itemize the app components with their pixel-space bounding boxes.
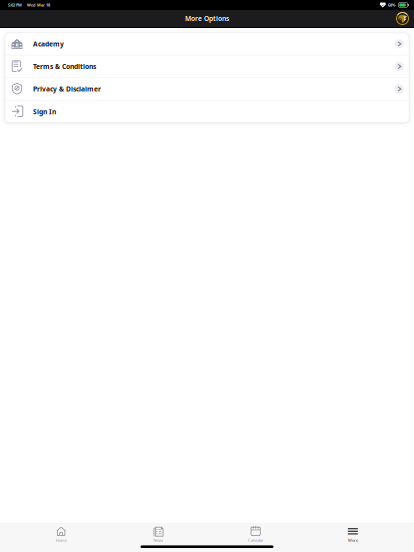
staticText: Sign In (33, 107, 56, 116)
button[interactable]: Terms & Conditions (5, 55, 409, 77)
button[interactable]: News (110, 526, 207, 543)
staticText: Calendar (248, 537, 264, 543)
button[interactable]: Sign In (5, 100, 409, 122)
button[interactable]: Profile (395, 11, 409, 25)
staticText: Privacy & Disclaimer (33, 85, 101, 93)
button[interactable]: More (304, 526, 401, 543)
staticText: Terms & Conditions (33, 62, 96, 71)
staticText: Wed Mar 18 (27, 2, 50, 8)
staticText: 5:02 PM (8, 2, 22, 8)
staticText: Home (56, 537, 67, 543)
staticText: More Options (185, 14, 229, 23)
staticText: 68% (388, 2, 396, 8)
button[interactable]: Home (12, 526, 110, 543)
button[interactable]: Calendar (207, 526, 304, 543)
button[interactable]: Privacy & Disclaimer (5, 78, 409, 100)
button[interactable]: Academy (5, 33, 409, 55)
staticText: Academy (33, 39, 64, 48)
staticText: More (348, 537, 358, 543)
staticText: News (153, 537, 163, 543)
